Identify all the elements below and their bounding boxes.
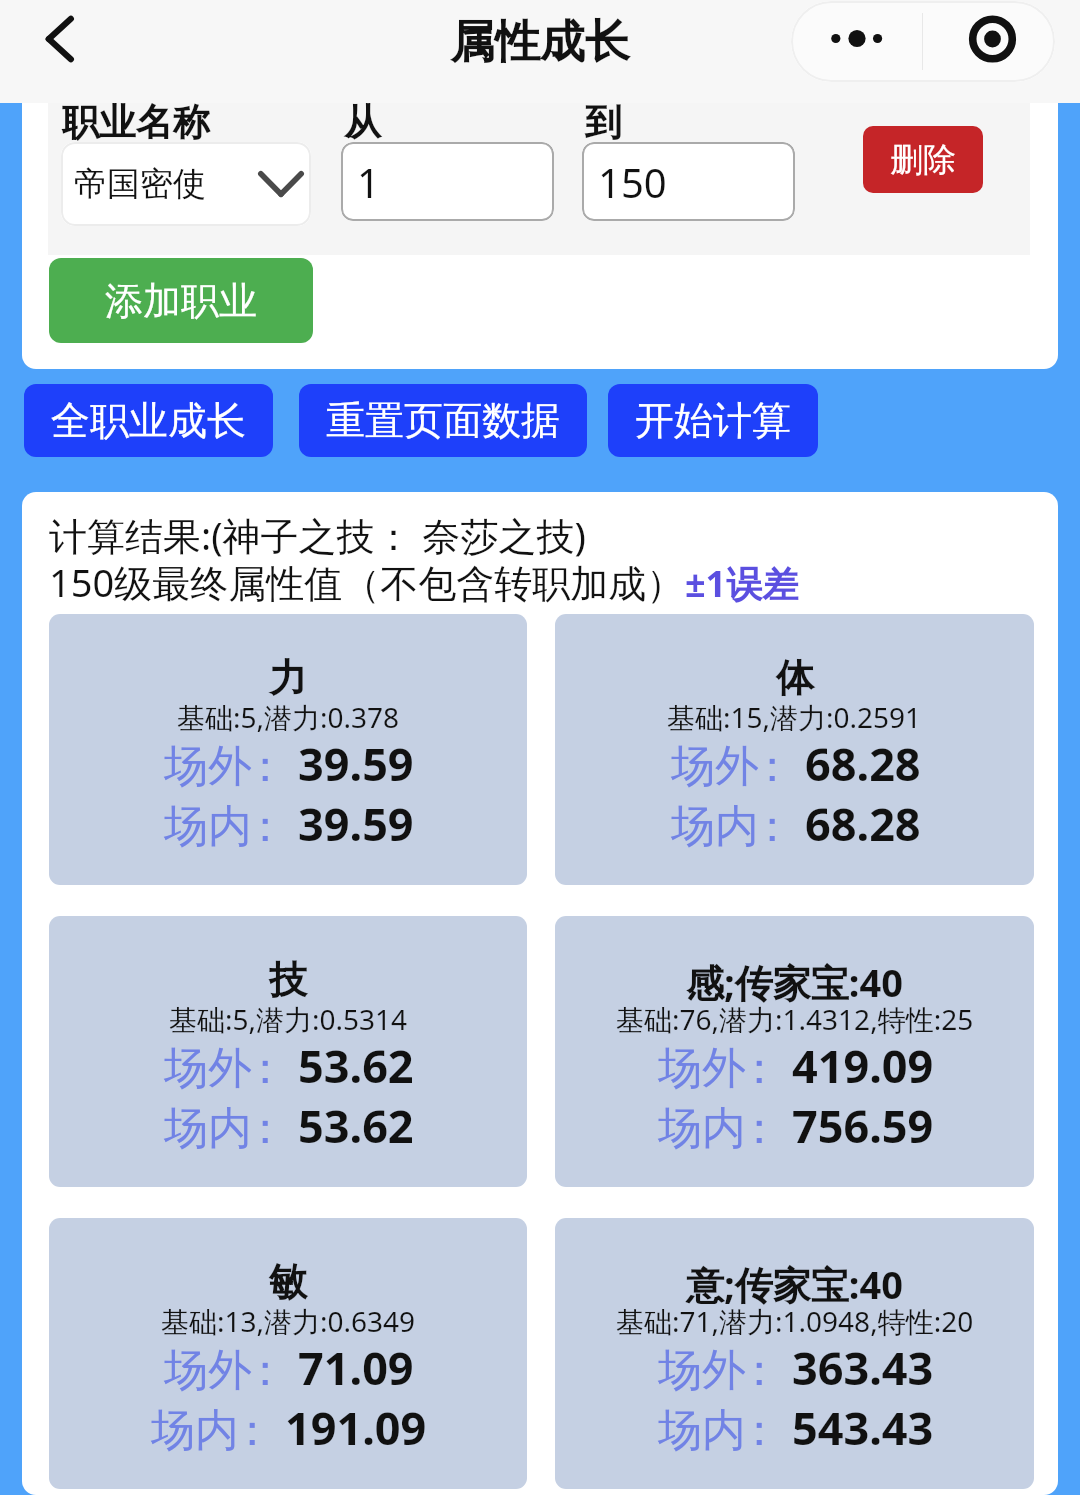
staticText: ： xyxy=(243,739,287,794)
button[interactable]: 150 xyxy=(582,142,795,221)
staticText: ： xyxy=(737,1343,781,1398)
staticText: 开始计算 xyxy=(635,396,791,445)
staticText: 意;传家宝:40 xyxy=(686,1258,903,1310)
staticText: 150级最终属性值（不包含转职加成） xyxy=(49,556,685,608)
staticText: 场外 xyxy=(164,739,252,794)
staticText: 场外 xyxy=(671,739,759,794)
staticText: 属性成长 xyxy=(450,14,630,71)
staticText: 添加职业 xyxy=(105,277,257,325)
staticText: 场内 xyxy=(658,1403,746,1458)
staticText: 71.09 xyxy=(298,1337,414,1398)
staticText: 场内 xyxy=(164,799,252,854)
staticText: 基础:13,潜力:0.6349 xyxy=(161,1302,416,1340)
staticText: 全职业成长 xyxy=(51,396,246,445)
staticText: 419.09 xyxy=(792,1035,934,1096)
staticText: ±1误差 xyxy=(685,559,799,608)
button[interactable]: 添加职业 xyxy=(49,258,313,343)
staticText: 150 xyxy=(598,155,667,209)
button[interactable]: 力 xyxy=(49,614,527,885)
staticText: 场外 xyxy=(658,1343,746,1398)
staticText: 重置页面数据 xyxy=(326,396,560,445)
staticText: 场外 xyxy=(658,1041,746,1096)
staticText: 39.59 xyxy=(298,733,414,794)
button[interactable]: 帝国密使 xyxy=(61,142,311,226)
button[interactable]: 1 xyxy=(341,142,554,221)
staticText: ： xyxy=(230,1403,274,1458)
staticText: 基础:15,潜力:0.2591 xyxy=(667,698,922,736)
staticText: 基础:5,潜力:0.378 xyxy=(177,698,400,736)
staticText: 场内 xyxy=(151,1403,239,1458)
staticText: 543.43 xyxy=(792,1397,934,1458)
staticText: 计算结果:(神子之技： 奈莎之技) xyxy=(49,509,586,561)
staticText: 68.28 xyxy=(805,733,921,794)
staticText: 场内 xyxy=(164,1101,252,1156)
button[interactable]: Back xyxy=(24,5,92,73)
staticText: 感;传家宝:40 xyxy=(686,956,903,1008)
staticText: 力 xyxy=(269,654,307,702)
staticText: 191.09 xyxy=(285,1397,427,1458)
button[interactable]: 删除 xyxy=(863,126,983,193)
staticText: ： xyxy=(243,1101,287,1156)
staticText: 场外 xyxy=(164,1343,252,1398)
staticText: ： xyxy=(243,799,287,854)
staticText: 基础:71,潜力:1.0948,特性:20 xyxy=(616,1302,974,1340)
staticText: 体 xyxy=(776,654,814,702)
button[interactable]: Close mini program xyxy=(923,1,1055,82)
staticText: ： xyxy=(737,1403,781,1458)
button[interactable]: 技 xyxy=(49,916,527,1187)
staticText: 756.59 xyxy=(792,1095,934,1156)
staticText: ： xyxy=(750,799,794,854)
staticText: 从 xyxy=(344,103,381,146)
staticText: 技 xyxy=(269,956,307,1004)
staticText: ： xyxy=(737,1041,781,1096)
staticText: 场内 xyxy=(671,799,759,854)
button[interactable]: 敏 xyxy=(49,1218,527,1489)
staticText: 职业名称 xyxy=(62,103,210,146)
button[interactable]: 感;传家宝:40 xyxy=(555,916,1034,1187)
staticText: 敏 xyxy=(269,1258,307,1306)
staticText: ： xyxy=(737,1101,781,1156)
staticText: ： xyxy=(750,739,794,794)
staticText: 68.28 xyxy=(805,793,921,854)
staticText: ： xyxy=(243,1343,287,1398)
button[interactable]: More options xyxy=(791,1,922,82)
staticText: ： xyxy=(243,1041,287,1096)
button[interactable]: 重置页面数据 xyxy=(299,384,587,457)
staticText: 基础:76,潜力:1.4312,特性:25 xyxy=(616,1000,974,1038)
staticText: 场内 xyxy=(658,1101,746,1156)
staticText: 帝国密使 xyxy=(74,163,206,205)
staticText: 1 xyxy=(357,155,380,209)
staticText: 53.62 xyxy=(298,1035,414,1096)
button[interactable]: 意;传家宝:40 xyxy=(555,1218,1034,1489)
staticText: 删除 xyxy=(890,139,956,181)
button[interactable]: 全职业成长 xyxy=(24,384,273,457)
staticText: 363.43 xyxy=(792,1337,934,1398)
staticText: 39.59 xyxy=(298,793,414,854)
staticText: 基础:5,潜力:0.5314 xyxy=(169,1000,408,1038)
button[interactable]: 体 xyxy=(555,614,1034,885)
button[interactable]: 开始计算 xyxy=(608,384,818,457)
staticText: 场外 xyxy=(164,1041,252,1096)
staticText: 53.62 xyxy=(298,1095,414,1156)
staticText: 到 xyxy=(585,103,622,146)
